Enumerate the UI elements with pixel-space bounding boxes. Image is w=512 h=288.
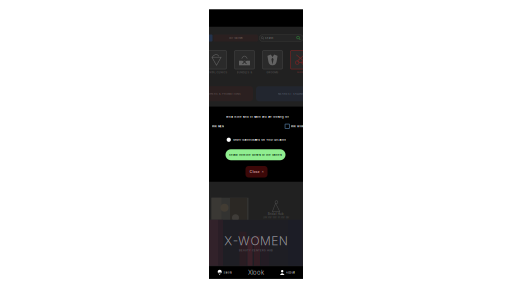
staticText: Account	[286, 271, 295, 274]
button[interactable]: Search from the closest to the farthest	[225, 149, 285, 160]
button[interactable]: DENTAL CLINICS	[204, 50, 228, 74]
button[interactable]: BUNDLES &	[232, 50, 256, 74]
staticText: Search	[265, 36, 273, 40]
staticText: Look your best on your day	[263, 216, 289, 219]
staticText: BEAUTY CENTERS HUB	[239, 249, 273, 252]
button[interactable]: Close	[245, 166, 267, 177]
staticText: X-WOMEN	[224, 234, 288, 248]
staticText: GROOMS	[266, 71, 278, 74]
staticText: Xlook	[248, 269, 264, 276]
button[interactable]: OFFERS & PROMOTIONS	[205, 86, 253, 101]
staticText: Close	[249, 170, 259, 174]
button[interactable]: Order Salons Based On Your Location	[227, 136, 286, 143]
staticText: Search from the closest to the farthest	[229, 153, 282, 156]
staticText: What is the kind of salon you are lookin…	[226, 115, 289, 118]
button[interactable]: Account	[272, 266, 303, 279]
button[interactable]: For Women	[213, 34, 258, 41]
staticText: HAIR	[297, 71, 304, 74]
staticText: DENTAL CLINICS	[205, 71, 227, 74]
staticText: NEAREST SALONS	[278, 92, 304, 95]
button[interactable]: NEAREST SALONS	[256, 86, 308, 101]
staticText: BUNDLES &	[236, 71, 252, 74]
staticText: Order Salons Based On Your Location	[233, 138, 286, 141]
staticText: FOR MEN	[212, 125, 224, 128]
button[interactable]: FOR WOMEN	[285, 122, 308, 130]
button[interactable]: GROOMS	[260, 50, 284, 74]
staticText: ✕	[261, 170, 263, 173]
button[interactable]: HAIR	[288, 50, 312, 74]
staticText: For Women	[229, 36, 242, 40]
button[interactable]: FOR MEN	[210, 123, 225, 129]
staticText: FOR WOMEN	[291, 125, 308, 128]
button[interactable]: Search	[259, 34, 303, 41]
staticText: Salons	[223, 271, 231, 274]
button[interactable]: Salons	[209, 266, 240, 279]
button[interactable]: Bridal Hub	[209, 197, 303, 222]
button[interactable]: Xlook	[240, 266, 272, 279]
staticText: OFFERS & PROMOTIONS	[208, 92, 241, 95]
staticText: Bridal Hub	[268, 212, 284, 216]
button[interactable]: X-Women beauty centers hub	[209, 220, 303, 266]
